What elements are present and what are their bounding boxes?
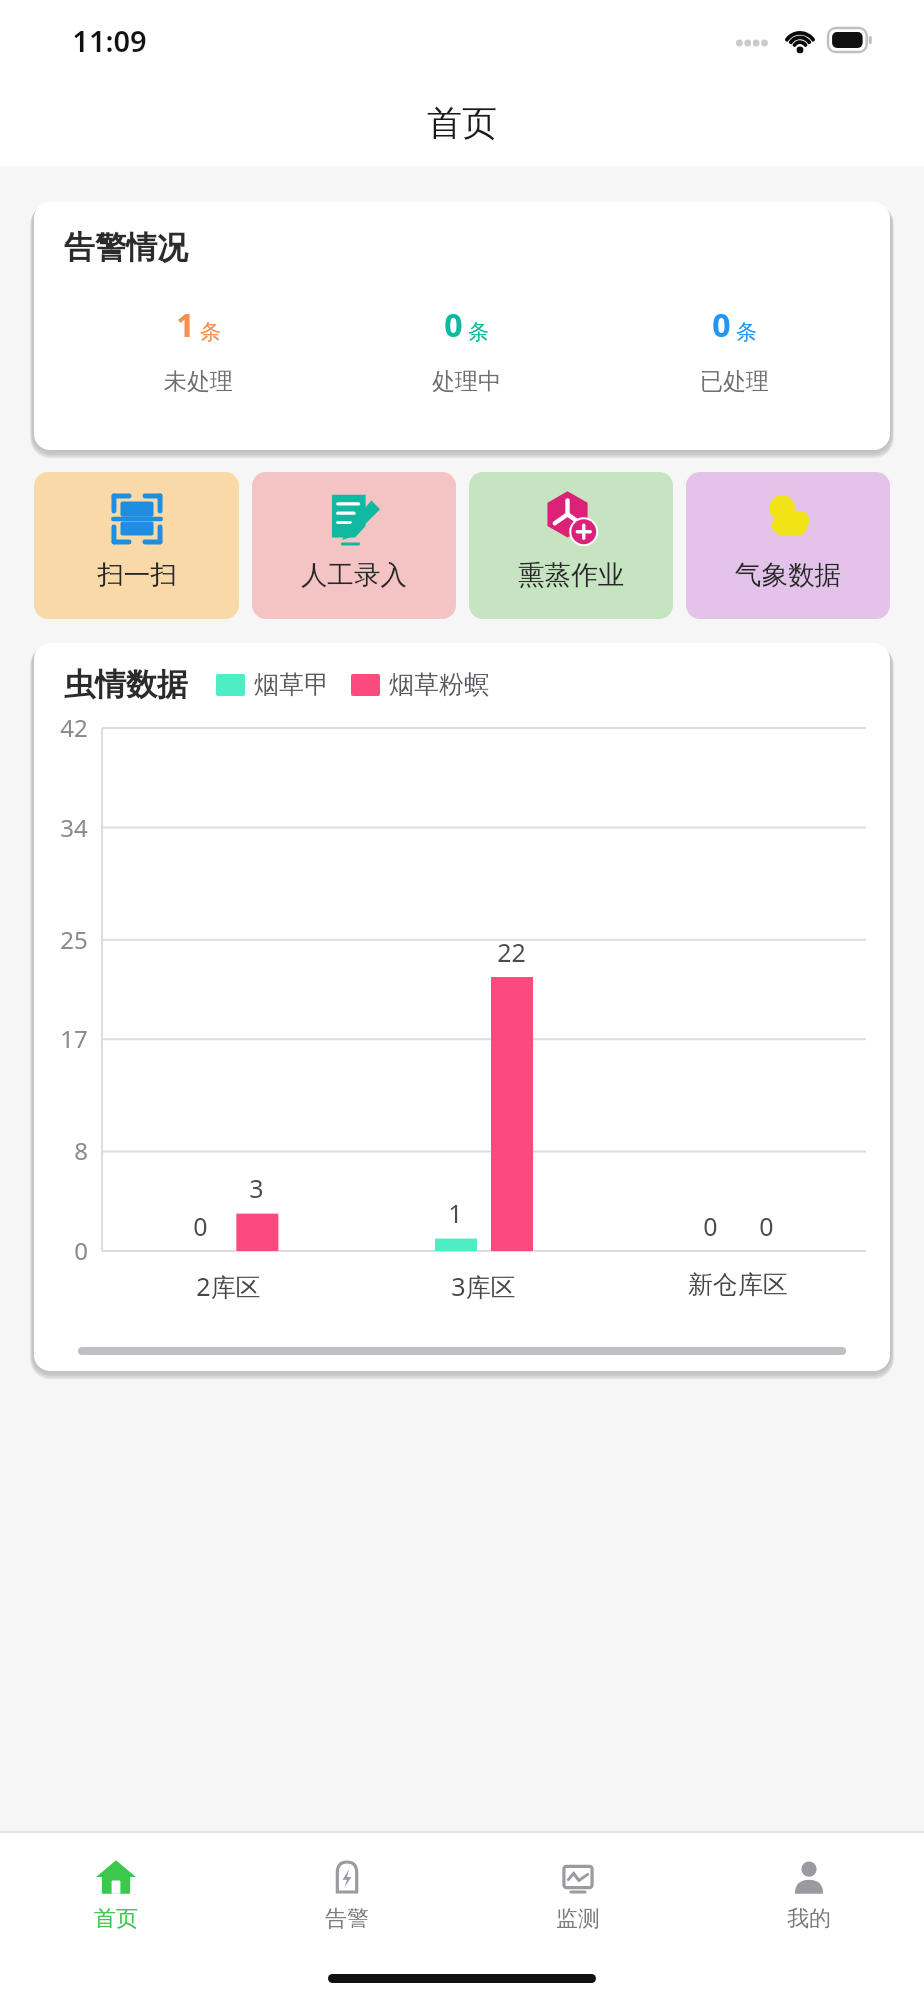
button[interactable]: 熏蒸作业 [469,472,673,619]
staticText: 22 [497,935,526,969]
staticText: 告警 [325,1905,369,1933]
staticText: 我的 [787,1905,831,1933]
staticText: 42 [60,711,88,744]
staticText: 首页 [94,1905,138,1933]
staticText: 新仓库区 [688,1269,788,1300]
other: 监测 [556,1855,600,1899]
staticText: 3 [249,1171,264,1205]
staticText: 0 [759,1209,774,1243]
staticText: 条 [736,319,757,345]
staticText: 已处理 [700,367,769,396]
button[interactable]: 气象数据 [686,472,890,619]
staticText: 2库区 [196,1269,261,1303]
button[interactable]: 监测 [462,1832,693,1956]
staticText: 气象数据 [735,558,841,591]
staticText: 处理中 [432,367,501,396]
staticText: 监测 [556,1905,600,1933]
staticText: 烟草粉螟 [389,669,489,700]
staticText: 烟草甲 [254,669,329,700]
staticText: 虫情数据 [64,665,188,704]
staticText: 0 [193,1209,208,1243]
staticText: 人工录入 [301,558,407,591]
staticText: 3库区 [451,1269,516,1303]
staticText: 11:09 [72,21,147,60]
button[interactable]: 我的 [693,1832,924,1956]
staticText: 条 [468,319,489,345]
staticText: 1 [448,1196,463,1230]
button[interactable]: 首页 [0,1832,231,1956]
staticText: 0 [712,303,731,347]
staticText: 熏蒸作业 [518,558,624,591]
button[interactable]: 人工录入 [252,472,456,619]
staticText: 条 [200,319,221,345]
button[interactable]: 1 [64,301,332,398]
staticText: 1 [176,303,195,347]
button[interactable]: 0 [332,301,600,398]
staticText: 告警情况 [64,228,188,267]
staticText: 扫一扫 [97,558,177,591]
button[interactable]: 0 [600,301,868,398]
button[interactable]: 告警 [231,1832,462,1956]
other: 我的 [787,1855,831,1899]
staticText: 0 [444,303,463,347]
staticText: 0 [703,1209,718,1243]
staticText: 未处理 [164,367,233,396]
staticText: 首页 [427,101,497,145]
other: 首页 [94,1855,138,1899]
staticText: 34 [60,811,88,844]
other: 告警 [325,1855,369,1899]
staticText: 25 [60,923,88,956]
staticText: 17 [60,1022,88,1055]
staticText: 0 [74,1234,88,1267]
staticText: 8 [74,1134,88,1167]
button[interactable]: 扫一扫 [34,472,239,619]
